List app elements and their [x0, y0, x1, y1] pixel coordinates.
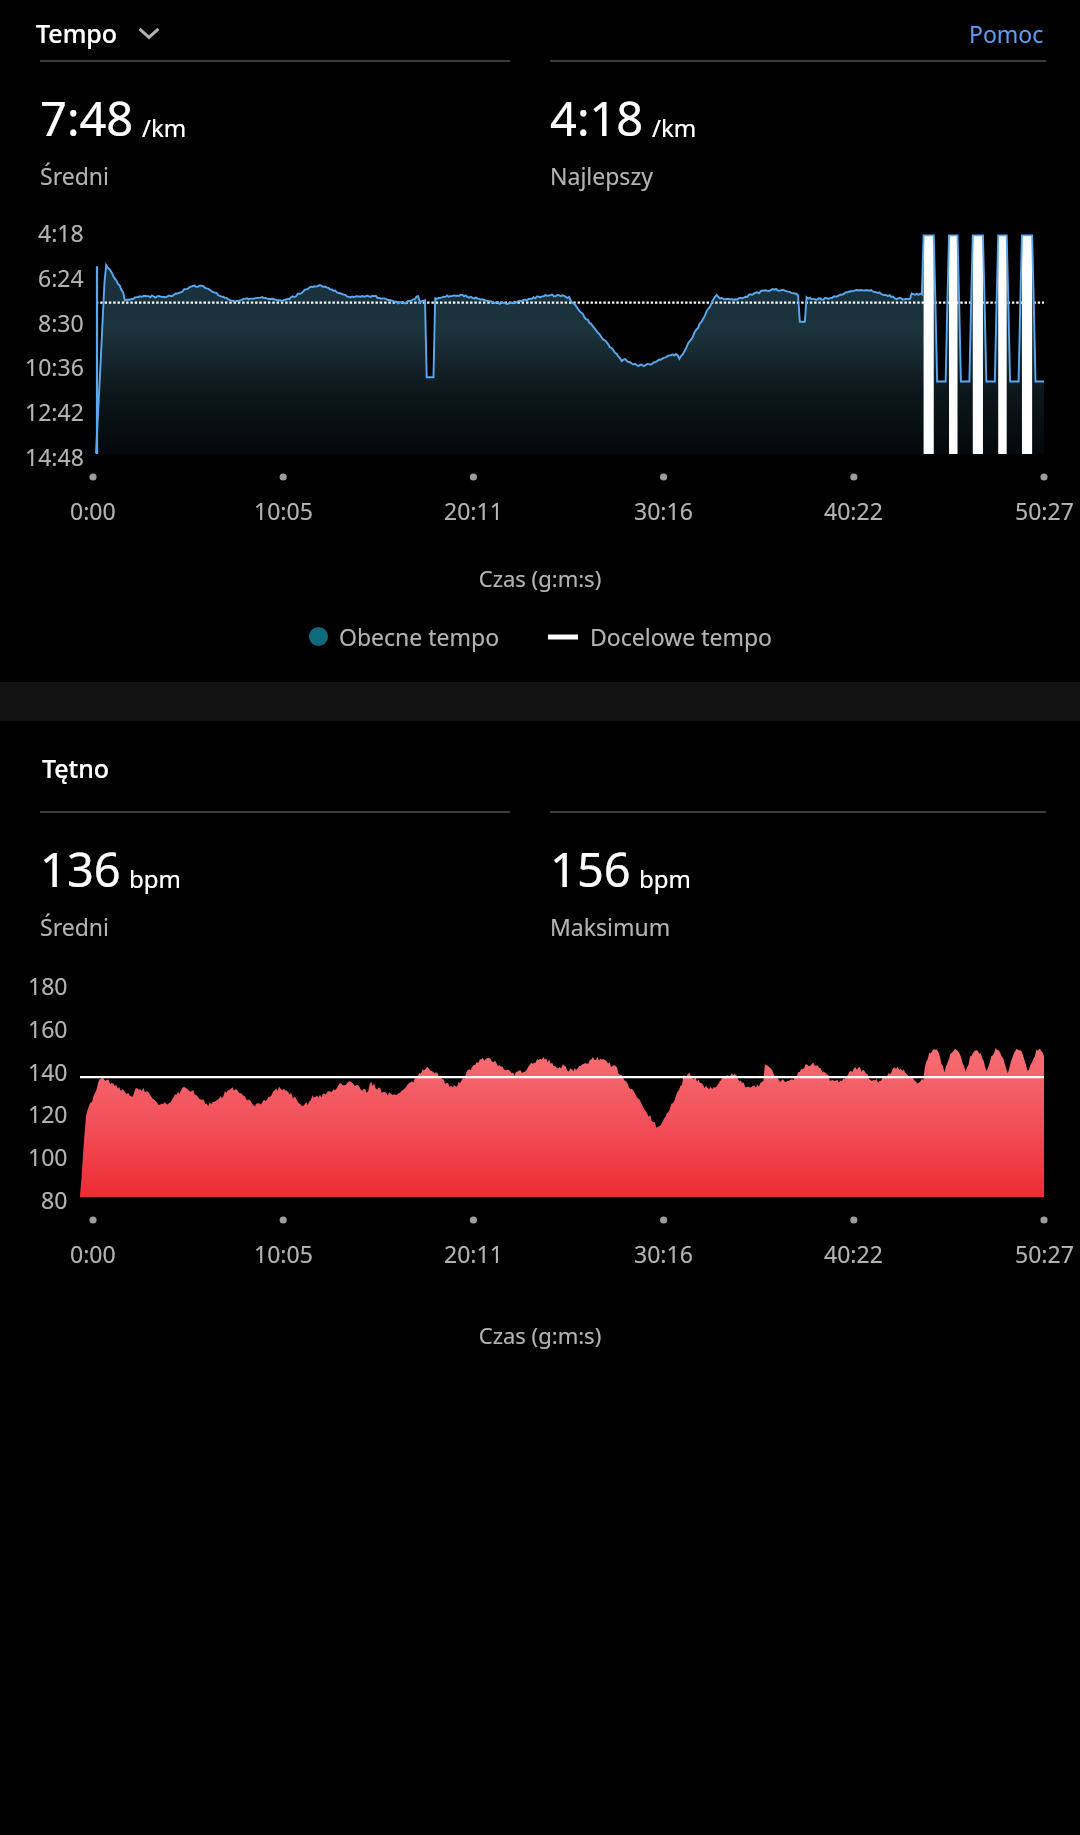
staticText: 30:16 [634, 495, 693, 526]
staticText: 50:27 [1015, 1238, 1074, 1269]
staticText: Czas (g:m:s) [0, 563, 1080, 593]
staticText: Średni [40, 911, 109, 942]
staticText: 30:16 [634, 1238, 693, 1269]
staticText: 120 [28, 1098, 68, 1124]
staticText: 12:42 [25, 396, 84, 422]
staticText: 156 [550, 837, 631, 901]
staticText: /km [652, 111, 697, 144]
staticText: Maksimum [550, 911, 671, 942]
staticText: 4:18 [38, 217, 84, 243]
staticText: 160 [28, 1013, 68, 1039]
staticText: 0:00 [70, 495, 116, 526]
staticText: 4:18 [550, 86, 644, 150]
staticText: Tempo [36, 16, 118, 50]
staticText: Średni [40, 160, 109, 191]
staticText: Pomoc [969, 18, 1044, 49]
staticText: 10:05 [254, 495, 313, 526]
staticText: /km [142, 111, 187, 144]
staticText: 7:48 [40, 86, 134, 150]
button[interactable]: Pomoc [951, 8, 1080, 59]
staticText: Tętno [42, 751, 110, 785]
staticText: Obecne tempo [339, 621, 500, 652]
staticText: 180 [28, 970, 68, 996]
staticText: bpm [129, 862, 181, 895]
staticText: 14:48 [25, 441, 84, 467]
staticText: bpm [639, 862, 691, 895]
staticText: 40:22 [824, 1238, 883, 1269]
staticText: 100 [28, 1141, 68, 1167]
staticText: 20:11 [444, 1238, 503, 1269]
staticText: 10:05 [254, 1238, 313, 1269]
staticText: 20:11 [444, 495, 503, 526]
staticText: 50:27 [1015, 495, 1074, 526]
staticText: 8:30 [38, 307, 84, 333]
staticText: Czas (g:m:s) [0, 1320, 1080, 1350]
staticText: 0:00 [70, 1238, 116, 1269]
button[interactable]: Tempo [0, 10, 174, 56]
staticText: 80 [41, 1184, 68, 1210]
staticText: 136 [40, 837, 121, 901]
staticText: Docelowe tempo [590, 621, 772, 652]
staticText: Najlepszy [550, 160, 653, 191]
staticText: 40:22 [824, 495, 883, 526]
staticText: 140 [28, 1056, 68, 1082]
staticText: 10:36 [25, 351, 84, 377]
staticText: 6:24 [38, 262, 84, 288]
